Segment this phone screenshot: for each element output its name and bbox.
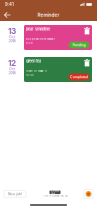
staticText: 2018 <box>8 39 15 43</box>
staticText: buy pears from market <box>26 37 55 40</box>
staticText: Oct <box>9 67 15 71</box>
button[interactable]: pear smoothie <box>24 25 92 50</box>
staticText: This is a blank text ad <box>43 194 67 197</box>
staticText: 13:35 <box>26 73 34 76</box>
staticText: 11:29 <box>26 41 33 44</box>
button[interactable]: Back <box>0 10 16 20</box>
staticText: Pending <box>72 43 85 47</box>
staticText: 2018 <box>8 71 15 75</box>
staticText: 9:41 <box>5 2 14 7</box>
staticText: 13 <box>8 26 16 36</box>
staticText: Completed <box>70 75 88 79</box>
staticText: pear smoothie <box>26 27 50 31</box>
button[interactable]: green tea <box>24 57 92 82</box>
staticText: Load Ad <box>51 189 59 196</box>
staticText: green tea <box>26 59 41 63</box>
staticText: Nice job! <box>8 192 22 196</box>
staticText: Reminder <box>37 12 59 18</box>
staticText: Oct <box>9 35 15 39</box>
staticText: learn to make it <box>26 69 47 72</box>
staticText: 12 <box>8 58 16 68</box>
